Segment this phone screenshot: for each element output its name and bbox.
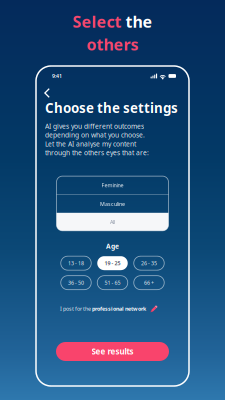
staticText: 36 - 50 [68,279,84,286]
staticText: 51 - 65 [104,279,120,286]
staticText: AI gives you different outcomes [45,122,144,131]
staticText: the [125,11,152,32]
button[interactable]: Feminine [56,176,168,194]
staticText: others [86,34,138,55]
staticText: Select [72,11,121,32]
staticText: I post for the [60,305,92,312]
button[interactable]: 13 - 18 [61,256,91,270]
staticText: Choose the settings [45,99,178,117]
staticText: Feminine [101,182,123,189]
button[interactable]: 19 - 25 [97,256,128,270]
button[interactable]: Back [44,89,54,97]
staticText: 66 + [144,279,154,286]
button[interactable]: All [56,213,168,231]
button[interactable]: 26 - 35 [134,256,164,270]
staticText: depending on what you choose. [45,131,145,139]
button[interactable]: 51 - 65 [97,276,128,290]
button[interactable]: I post for the [60,305,158,313]
staticText: Masculine [100,200,125,207]
staticText: 26 - 35 [141,260,157,267]
button[interactable]: See results [56,342,169,361]
staticText: through the others eyes that are: [45,148,149,157]
staticText: professional network [92,305,146,312]
staticText: Age [106,242,119,251]
staticText: 19 - 25 [104,260,120,267]
staticText: All [110,218,115,225]
staticText: See results [91,346,133,357]
staticText: 9:41 [52,72,62,80]
button[interactable]: 66 + [134,276,164,290]
staticText: Let the AI analyse my content [45,139,136,148]
staticText: 13 - 18 [68,260,84,267]
button[interactable]: 36 - 50 [61,276,91,290]
button[interactable]: Masculine [56,195,168,213]
